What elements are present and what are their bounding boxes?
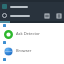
button[interactable]: Ask Detector: [0, 27, 64, 40]
staticText: Browser: [16, 48, 32, 53]
staticText: Ask Detector: [16, 31, 40, 36]
button[interactable]: [0, 2, 64, 11]
button[interactable]: Settings: [55, 12, 62, 19]
button[interactable]: Browser: [0, 44, 64, 57]
button[interactable]: Grid view: [43, 12, 50, 19]
button[interactable]: [2, 13, 30, 18]
